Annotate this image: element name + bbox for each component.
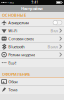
button[interactable]: Авиарежим: [0, 19, 64, 27]
staticText: MTS: [9, 1, 13, 4]
button[interactable]: Сотовая связь: [0, 35, 64, 43]
staticText: ОФОРМЛЕНИЕ: [2, 71, 30, 77]
staticText: ОСНОВНЫЕ: [2, 12, 26, 18]
staticText: Bluetooth: [8, 44, 24, 49]
staticText: Вкл.: [50, 28, 58, 33]
button[interactable]: Режим модема: [0, 51, 64, 59]
staticText: Обои: [8, 79, 17, 84]
staticText: 9:41: [31, 1, 38, 4]
button[interactable]: Обои: [0, 78, 64, 86]
staticText: Настройки: [21, 6, 43, 11]
staticText: Авиарежим: [8, 20, 29, 25]
staticText: Wi-Fi: [8, 28, 17, 33]
staticText: Выкл.: [47, 44, 58, 49]
staticText: Режим модема: [8, 52, 35, 57]
staticText: Тема: [8, 87, 17, 92]
staticText: Ещё: [8, 60, 16, 65]
button[interactable]: Bluetooth: [0, 43, 64, 51]
button[interactable]: Тема: [0, 86, 64, 94]
button[interactable]: Ещё: [0, 59, 64, 67]
staticText: Сотовая связь: [8, 36, 34, 41]
button[interactable]: Wi-Fi: [0, 27, 64, 35]
